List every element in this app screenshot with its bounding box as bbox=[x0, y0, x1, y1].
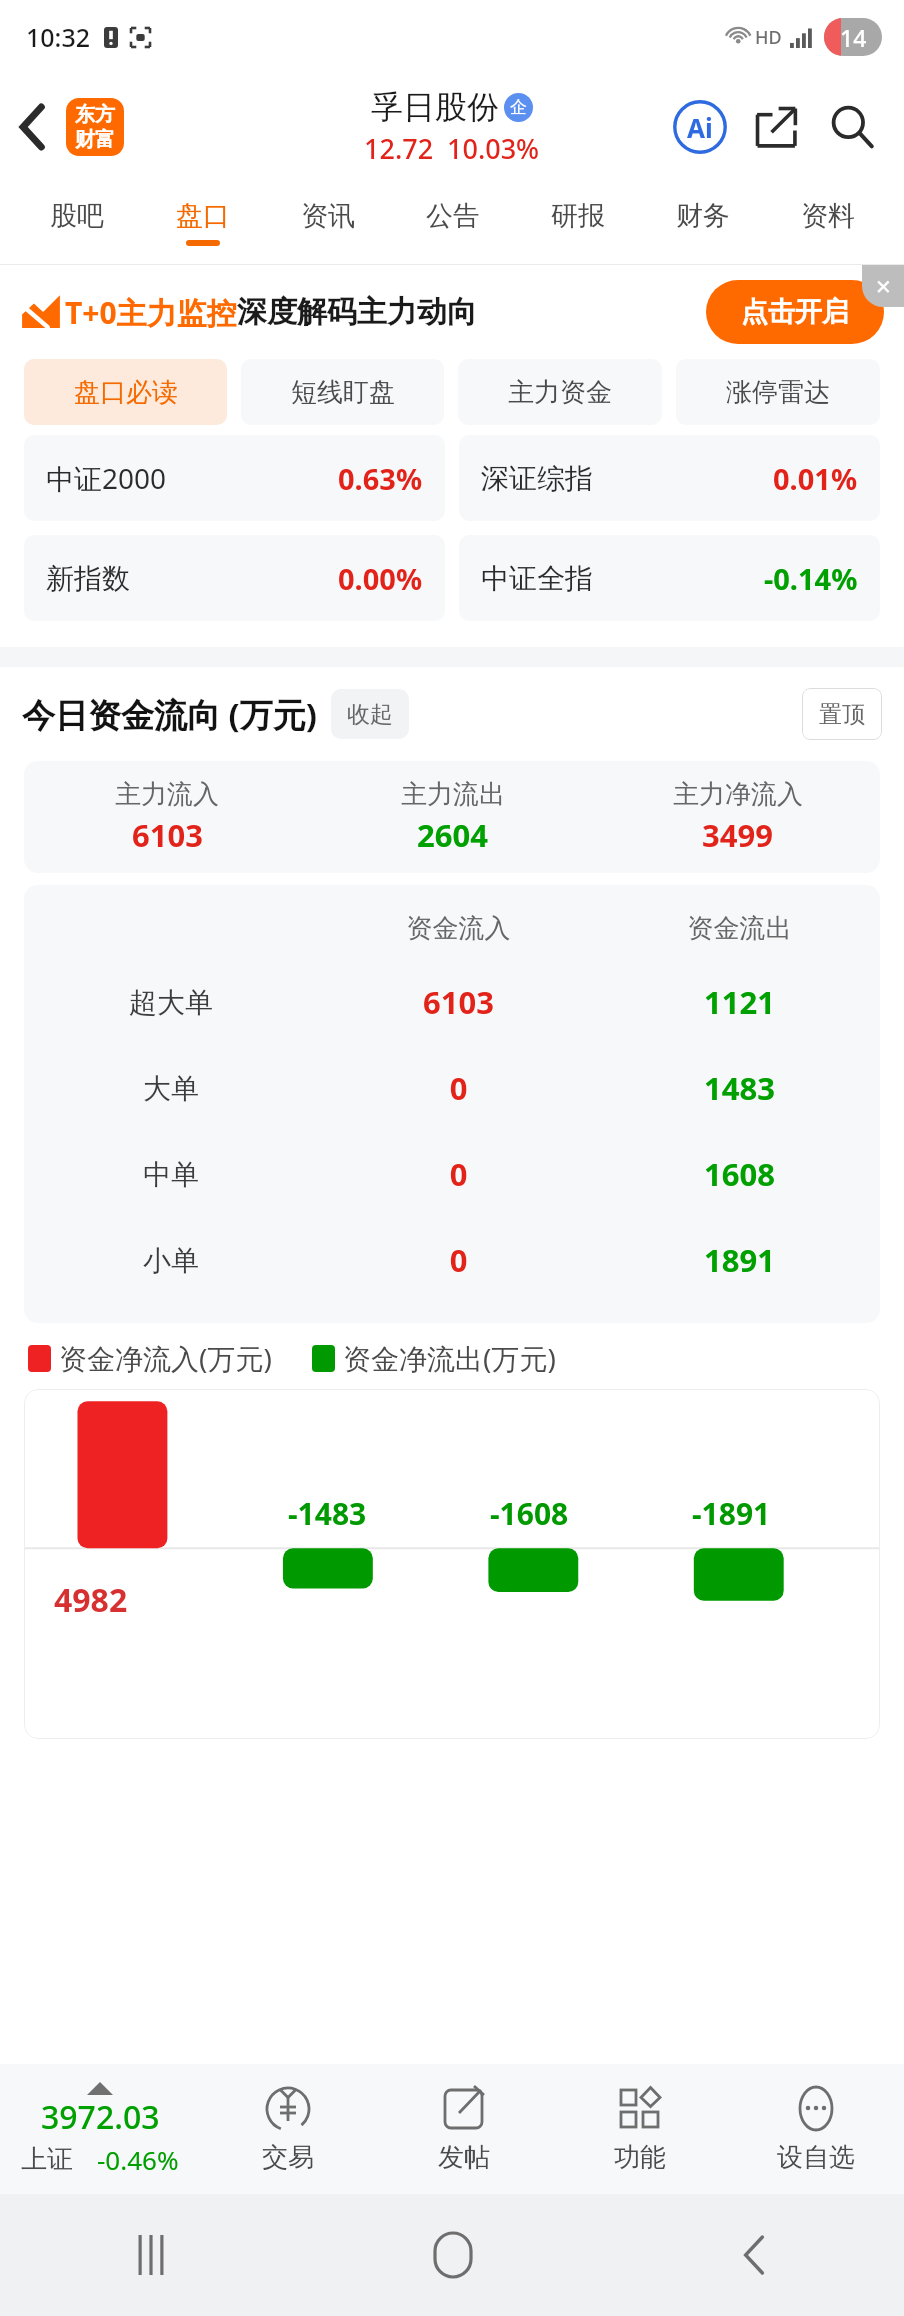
staticText: 盘口 bbox=[176, 199, 230, 233]
staticText: 财富 bbox=[75, 127, 115, 152]
button[interactable]: 中证2000 bbox=[24, 435, 445, 521]
staticText: -1608 bbox=[490, 1493, 569, 1534]
staticText: -1891 bbox=[692, 1493, 771, 1534]
button[interactable]: 发帖 bbox=[376, 2064, 552, 2194]
staticText: 孚日股份 bbox=[371, 87, 499, 127]
button[interactable]: 中证全指 bbox=[459, 535, 880, 621]
staticText: 10.03% bbox=[447, 130, 540, 167]
staticText: 公告 bbox=[426, 199, 480, 233]
staticText: 中证2000 bbox=[46, 459, 167, 497]
staticText: 6103 bbox=[132, 814, 203, 856]
button[interactable]: 盘口 bbox=[140, 180, 265, 264]
button[interactable]: 资料 bbox=[765, 180, 890, 264]
staticText: 超大单 bbox=[24, 985, 318, 1020]
button[interactable]: 置顶 bbox=[802, 688, 882, 740]
staticText: ✕ bbox=[875, 275, 892, 298]
staticText: 1121 bbox=[599, 981, 880, 1023]
staticText: 大单 bbox=[24, 1071, 318, 1106]
staticText: 3499 bbox=[702, 814, 773, 856]
staticText: 东方 bbox=[75, 102, 115, 127]
staticText: 12.72 bbox=[364, 130, 434, 167]
button[interactable]: 中单 bbox=[24, 1131, 880, 1217]
staticText: 10:32 bbox=[26, 20, 91, 54]
button[interactable]: 主力流入 bbox=[24, 761, 880, 873]
staticText: 设自选 bbox=[777, 2141, 855, 2174]
button[interactable]: Back bbox=[603, 2194, 904, 2316]
button[interactable]: 4982 bbox=[24, 1389, 880, 1739]
button[interactable]: 短线盯盘 bbox=[241, 359, 444, 425]
button[interactable]: 点击开启 bbox=[706, 280, 884, 344]
button[interactable]: 新指数 bbox=[24, 535, 445, 621]
button[interactable]: 超大单 bbox=[24, 959, 880, 1045]
button[interactable]: 股吧 bbox=[14, 180, 140, 264]
button[interactable]: 东方 bbox=[66, 98, 124, 156]
staticText: 主力净流入 bbox=[673, 778, 803, 811]
button[interactable]: 收起 bbox=[331, 689, 409, 739]
button[interactable]: AI assistant bbox=[662, 89, 738, 165]
staticText: 置顶 bbox=[819, 700, 865, 729]
staticText: 4982 bbox=[54, 1578, 128, 1622]
staticText: 上证 bbox=[21, 2143, 73, 2176]
button[interactable]: Search bbox=[814, 89, 890, 165]
staticText: -0.14% bbox=[764, 559, 858, 598]
staticText: 主力资金 bbox=[508, 376, 612, 409]
staticText: 功能 bbox=[614, 2141, 666, 2174]
staticText: 新指数 bbox=[46, 561, 130, 596]
button[interactable]: 大单 bbox=[24, 1045, 880, 1131]
staticText: 14 bbox=[840, 22, 867, 53]
staticText: 3972.03 bbox=[41, 2095, 160, 2139]
button[interactable]: 财务 bbox=[640, 180, 765, 264]
staticText: 资金净流出(万元) bbox=[343, 1339, 556, 1377]
staticText: 0 bbox=[318, 1239, 599, 1281]
button[interactable]: 功能 bbox=[552, 2064, 728, 2194]
button[interactable]: 资讯 bbox=[265, 180, 390, 264]
button[interactable]: Recents bbox=[0, 2194, 302, 2316]
staticText: 深证综指 bbox=[481, 461, 593, 496]
staticText: 主力流出 bbox=[401, 778, 505, 811]
staticText: 6103 bbox=[318, 981, 599, 1023]
staticText: T+0主力监控 bbox=[65, 292, 237, 333]
staticText: 收起 bbox=[347, 700, 393, 729]
button[interactable]: Home bbox=[302, 2194, 603, 2316]
button[interactable]: 盘口必读 bbox=[24, 359, 227, 425]
staticText: 深度解码主力动向 bbox=[237, 293, 477, 331]
staticText: 资讯 bbox=[301, 199, 355, 233]
button[interactable]: 设自选 bbox=[728, 2064, 904, 2194]
staticText: 2604 bbox=[417, 814, 488, 856]
staticText: 盘口必读 bbox=[74, 376, 178, 409]
staticText: 今日资金流向 (万元) bbox=[22, 692, 317, 737]
staticText: 1891 bbox=[599, 1239, 880, 1281]
staticText: 涨停雷达 bbox=[726, 376, 830, 409]
button[interactable]: Share bbox=[738, 89, 814, 165]
button[interactable]: 公告 bbox=[390, 180, 515, 264]
staticText: 交易 bbox=[262, 2141, 314, 2174]
button[interactable]: 深证综指 bbox=[459, 435, 880, 521]
staticText: 资金净流入(万元) bbox=[59, 1339, 272, 1377]
button[interactable]: 主力资金 bbox=[458, 359, 662, 425]
button[interactable]: Close ad bbox=[862, 265, 904, 307]
staticText: 资料 bbox=[801, 199, 855, 233]
staticText: 短线盯盘 bbox=[291, 376, 395, 409]
staticText: 资金流入 bbox=[318, 912, 599, 945]
staticText: 主力流入 bbox=[115, 778, 219, 811]
staticText: 0.63% bbox=[338, 459, 423, 498]
staticText: 0 bbox=[318, 1067, 599, 1109]
staticText: 股吧 bbox=[50, 199, 104, 233]
button[interactable]: 交易 bbox=[200, 2064, 376, 2194]
staticText: 小单 bbox=[24, 1243, 318, 1278]
staticText: HD bbox=[755, 25, 782, 50]
button[interactable]: 研报 bbox=[515, 180, 640, 264]
staticText: 1608 bbox=[599, 1153, 880, 1195]
staticText: 资金流出 bbox=[599, 912, 880, 945]
button[interactable]: 涨停雷达 bbox=[676, 359, 880, 425]
staticText: -1483 bbox=[288, 1493, 367, 1534]
staticText: 0.01% bbox=[773, 459, 858, 498]
staticText: 点击开启 bbox=[741, 295, 849, 329]
button[interactable]: 3972.03 bbox=[0, 2064, 200, 2194]
button[interactable]: Back bbox=[0, 85, 66, 169]
staticText: 0 bbox=[318, 1153, 599, 1195]
staticText: 财务 bbox=[676, 199, 730, 233]
staticText: Ai bbox=[687, 110, 713, 145]
button[interactable]: 小单 bbox=[24, 1217, 880, 1303]
staticText: 1483 bbox=[599, 1067, 880, 1109]
